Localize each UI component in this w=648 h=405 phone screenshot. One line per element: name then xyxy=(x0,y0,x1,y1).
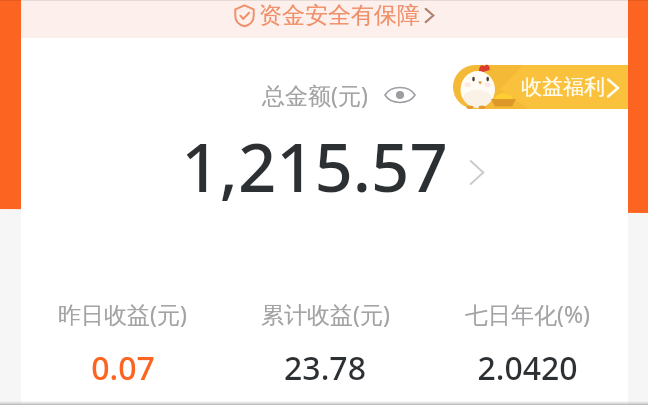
staticText: 收益福利 xyxy=(521,74,605,100)
staticText: 1,215.57 xyxy=(181,120,448,208)
button[interactable]: 资金安全有保障 xyxy=(21,0,628,38)
staticText: 七日年化(%) xyxy=(465,298,590,329)
staticText: 累计收益(元) xyxy=(261,298,390,329)
staticText: 0.07 xyxy=(91,346,155,390)
button[interactable]: 累计收益(元) xyxy=(224,298,426,390)
button[interactable]: Toggle amount visibility xyxy=(383,83,417,107)
button[interactable]: 昨日收益(元) xyxy=(21,298,224,390)
button[interactable]: 七日年化(%) xyxy=(426,298,628,390)
button[interactable]: 1,215.57 xyxy=(175,118,493,206)
button[interactable]: 收益福利 xyxy=(453,60,628,113)
staticText: 23.78 xyxy=(284,346,366,390)
staticText: 2.0420 xyxy=(477,346,578,390)
staticText: 资金安全有保障 xyxy=(259,1,420,30)
staticText: 昨日收益(元) xyxy=(58,298,187,329)
staticText: 总金额(元) xyxy=(262,79,368,110)
